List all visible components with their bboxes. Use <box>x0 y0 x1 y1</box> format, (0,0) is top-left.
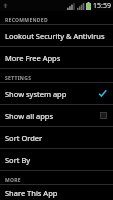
button[interactable]: Sort Order <box>0 127 113 148</box>
staticText: More Free Apps <box>5 53 107 63</box>
staticText: 15:59 <box>93 1 111 11</box>
staticText: Lookout Security & Antivirus <box>5 31 107 41</box>
button[interactable]: Share This App <box>0 185 113 200</box>
staticText: Share This App <box>5 188 107 198</box>
button[interactable]: Lookout Security & Antivirus <box>0 25 113 46</box>
staticText: RECOMMENDED <box>5 17 48 24</box>
staticText: MORE <box>5 177 21 184</box>
staticText: Show system app <box>5 89 98 99</box>
staticText: Sort By <box>5 155 107 165</box>
button[interactable]: More Free Apps <box>0 47 113 68</box>
staticText: Show all apps <box>5 111 100 121</box>
button[interactable]: Show system app <box>0 83 113 104</box>
button[interactable]: Sort By <box>0 149 113 170</box>
staticText: SETTINGS <box>5 75 32 82</box>
staticText: Sort Order <box>5 133 107 143</box>
button[interactable]: Show all apps <box>0 105 113 126</box>
